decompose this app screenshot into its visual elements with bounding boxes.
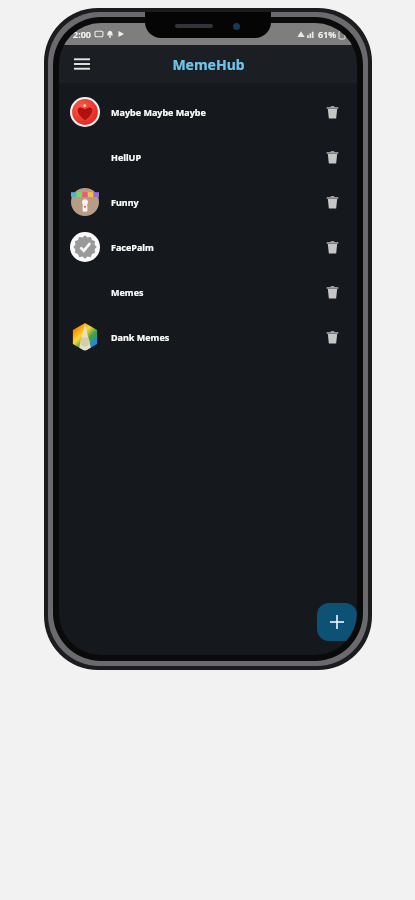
button[interactable]: FacePalm: [59, 224, 357, 269]
button[interactable]: Delete Maybe Maybe Maybe: [317, 97, 347, 127]
button[interactable]: Delete Funny: [317, 187, 347, 217]
staticText: 2:00: [73, 28, 91, 40]
staticText: Funny: [111, 196, 139, 208]
button[interactable]: Delete Dank Memes: [317, 322, 347, 352]
staticText: Maybe Maybe Maybe: [111, 106, 206, 118]
button[interactable]: Delete FacePalm: [317, 232, 347, 262]
button[interactable]: Open navigation menu: [65, 47, 99, 81]
button[interactable]: Funny: [59, 179, 357, 224]
button[interactable]: HellUP: [59, 134, 357, 179]
button[interactable]: Delete HellUP: [317, 142, 347, 172]
button[interactable]: Maybe Maybe Maybe: [59, 89, 357, 134]
staticText: HellUP: [111, 151, 142, 163]
button[interactable]: Dank Memes: [59, 314, 357, 359]
staticText: Memes: [111, 286, 144, 298]
staticText: Dank Memes: [111, 331, 170, 343]
button[interactable]: Delete Memes: [317, 277, 347, 307]
button[interactable]: Memes: [59, 269, 357, 314]
staticText: 61%: [318, 28, 337, 40]
staticText: FacePalm: [111, 241, 154, 253]
staticText: MemeHub: [172, 55, 245, 74]
button[interactable]: Add new: [317, 603, 357, 641]
